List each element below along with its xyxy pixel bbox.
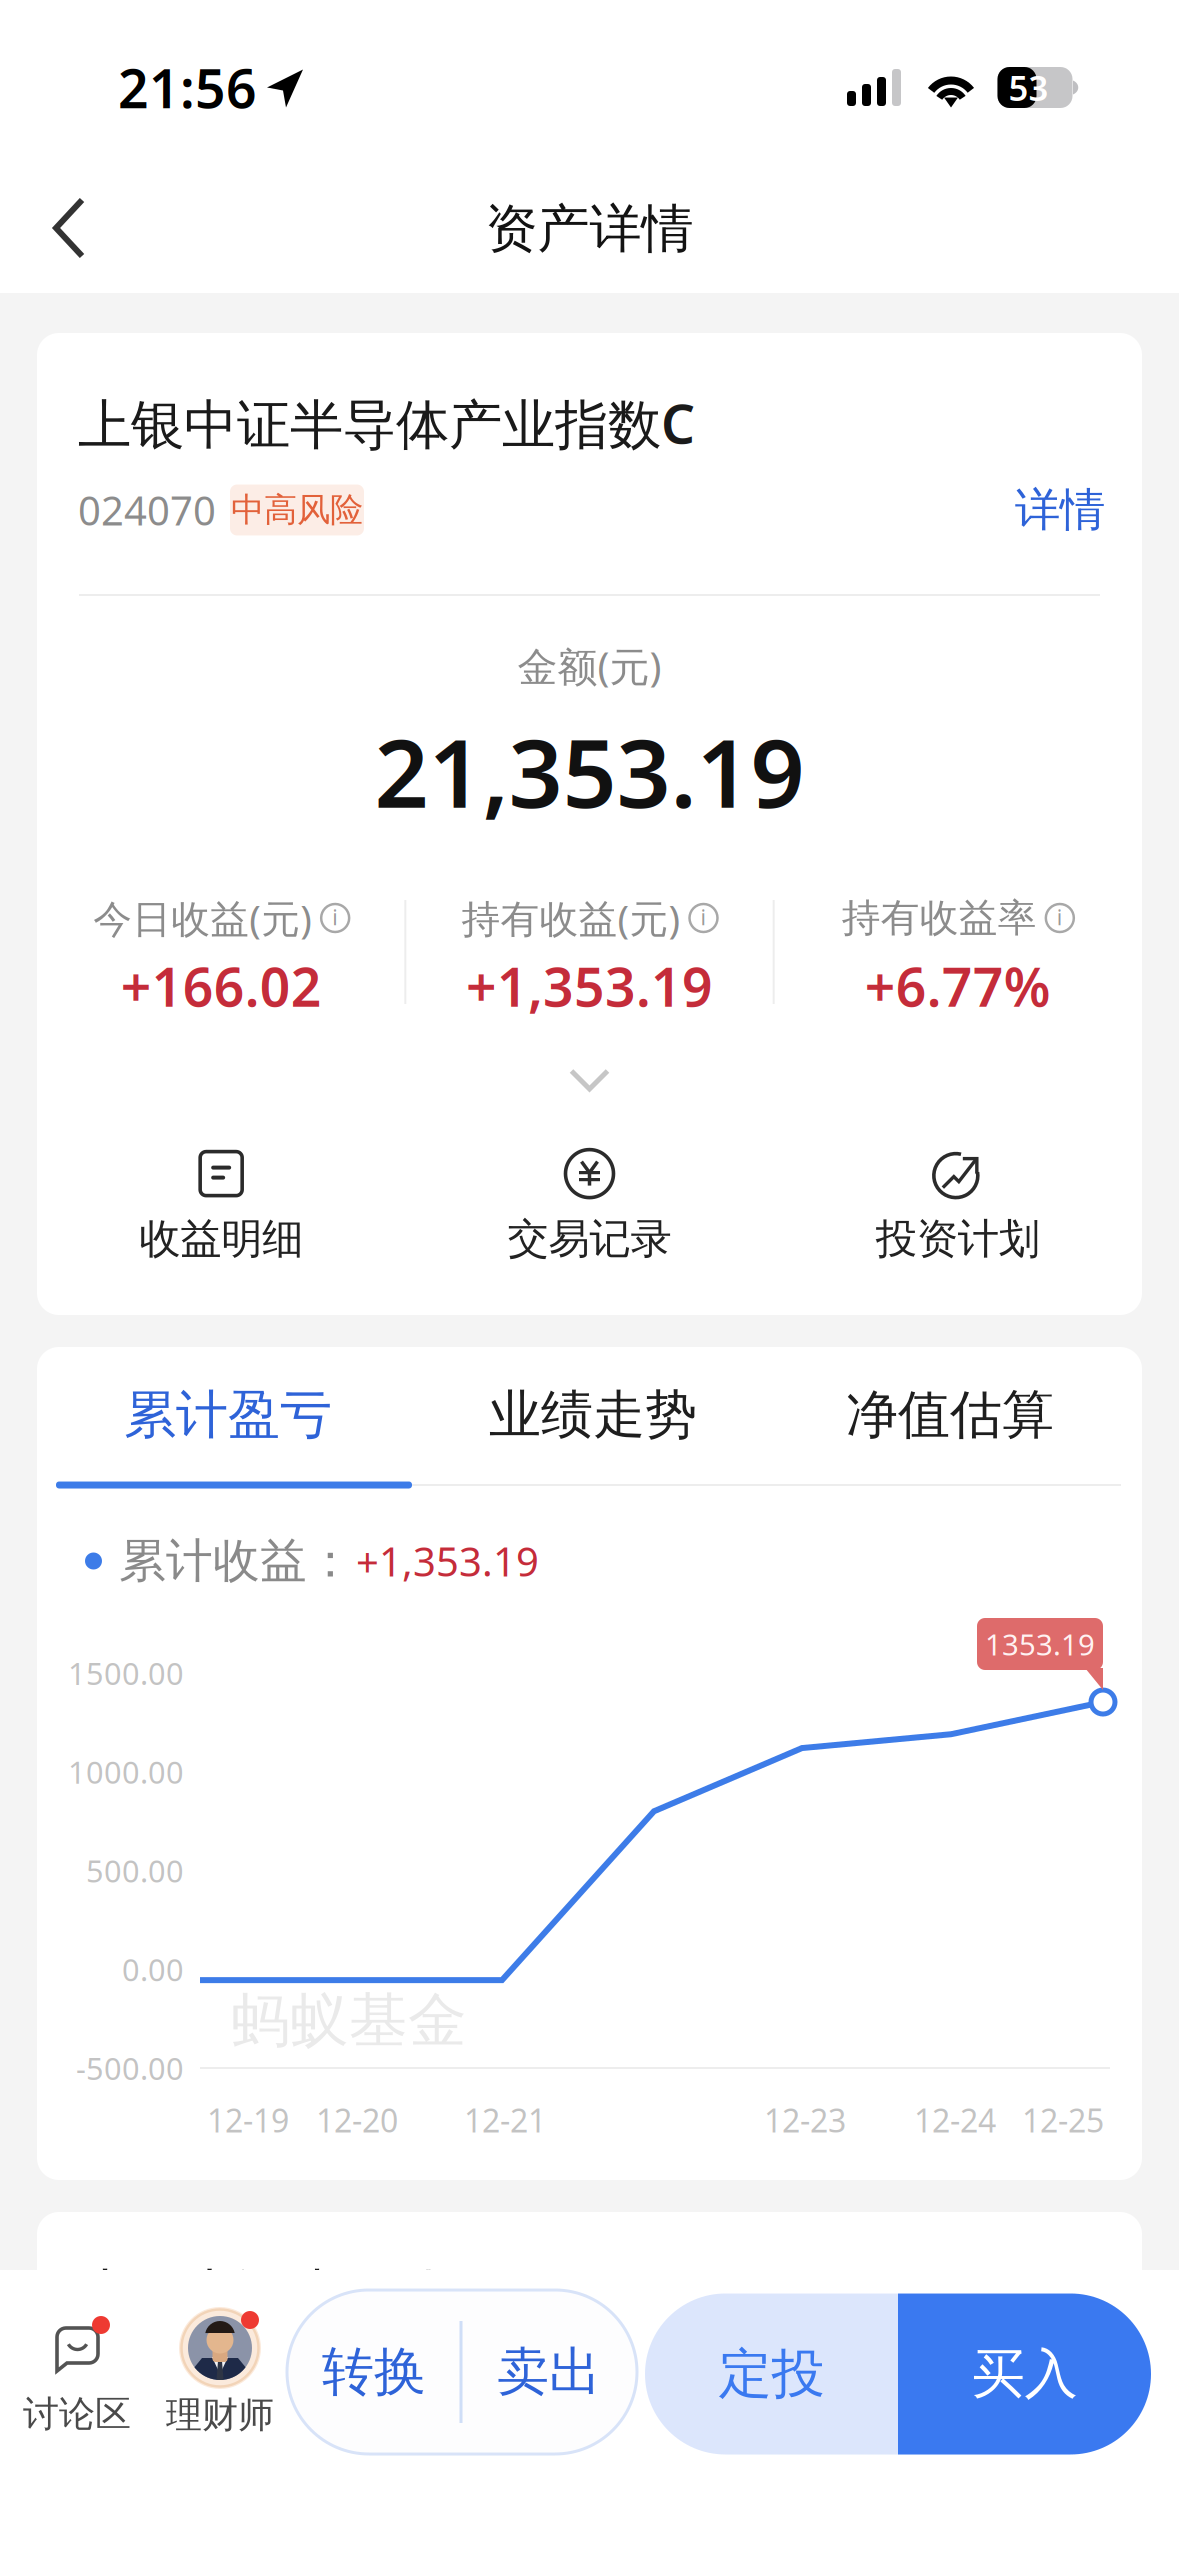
staticText: 讨论区 bbox=[23, 2392, 131, 2436]
staticText: 024070 bbox=[78, 483, 216, 536]
staticText: 卖出 bbox=[497, 2340, 601, 2404]
button[interactable]: 业绩走势 bbox=[415, 1350, 771, 1480]
button[interactable]: 讨论区 bbox=[0, 2270, 156, 2446]
staticText: 蚂蚁基金 bbox=[231, 1985, 467, 2057]
staticText: +1,353.19 bbox=[466, 951, 713, 1021]
button[interactable]: 投资计划 bbox=[818, 1140, 1098, 1270]
staticText: 收益明细 bbox=[139, 1214, 303, 1264]
staticText: 净值估算 bbox=[846, 1383, 1054, 1447]
button[interactable]: Expand bbox=[514, 1045, 664, 1117]
staticText: 上银中证半导体产业指数C bbox=[78, 388, 695, 458]
staticText: 0.00 bbox=[122, 1949, 184, 1990]
staticText: +6.77% bbox=[865, 951, 1051, 1021]
staticText: 业绩走势 bbox=[489, 1383, 697, 1447]
staticText: 21,353.19 bbox=[374, 708, 804, 834]
staticText: 今日收益(元) bbox=[93, 892, 312, 944]
staticText: i bbox=[1057, 903, 1063, 931]
staticText: 累计收益： bbox=[119, 1532, 354, 1590]
button[interactable]: 净值估算 bbox=[772, 1350, 1128, 1480]
staticText: -500.00 bbox=[76, 2048, 184, 2088]
button[interactable]: 理财师 bbox=[140, 2270, 300, 2446]
staticText: 详情 bbox=[1015, 482, 1105, 538]
staticText: 12-24 bbox=[914, 2099, 996, 2141]
staticText: 持有收益率 bbox=[842, 894, 1037, 942]
staticText: +1,353.19 bbox=[356, 1534, 539, 1587]
staticText: 12-19 bbox=[207, 2099, 289, 2141]
staticText: 理财师 bbox=[166, 2393, 274, 2437]
staticText: 500.00 bbox=[86, 1850, 184, 1891]
staticText: 定投 bbox=[718, 2341, 824, 2407]
staticText: 12-20 bbox=[316, 2099, 398, 2141]
staticText: 21:56 bbox=[118, 52, 257, 123]
staticText: 1500.00 bbox=[68, 1653, 184, 1693]
button[interactable]: 详情 bbox=[985, 474, 1105, 546]
staticText: +166.02 bbox=[121, 951, 322, 1021]
staticText: 金额(元) bbox=[517, 639, 661, 692]
button[interactable]: 交易记录 bbox=[449, 1140, 729, 1270]
staticText: 53 bbox=[1008, 64, 1048, 110]
button[interactable]: 累计盈亏 bbox=[50, 1350, 406, 1480]
staticText: 累计盈亏 bbox=[124, 1383, 332, 1447]
staticText: 12-23 bbox=[764, 2099, 846, 2141]
staticText: 1000.00 bbox=[68, 1751, 184, 1792]
button[interactable]: Back bbox=[0, 175, 113, 293]
staticText: 投资计划 bbox=[876, 1214, 1040, 1264]
staticText: i bbox=[700, 903, 706, 931]
staticText: 交易记录 bbox=[507, 1214, 671, 1264]
staticText: 上银中证半导体 bbox=[79, 2262, 450, 2327]
staticText: i bbox=[332, 903, 338, 931]
button[interactable]: 转换 bbox=[287, 2290, 461, 2454]
staticText: 资产详情 bbox=[485, 197, 693, 261]
staticText: 买入 bbox=[971, 2341, 1077, 2407]
staticText: 转换 bbox=[322, 2340, 426, 2404]
staticText: 12-25 bbox=[1022, 2099, 1104, 2141]
staticText: 1353.19 bbox=[985, 1624, 1095, 1663]
button[interactable]: 卖出 bbox=[461, 2290, 637, 2454]
button[interactable]: 收益明细 bbox=[81, 1140, 361, 1270]
button[interactable]: 定投 bbox=[645, 2293, 898, 2454]
staticText: 持有收益(元) bbox=[461, 892, 680, 944]
button[interactable]: 买入 bbox=[898, 2293, 1151, 2454]
staticText: 12-21 bbox=[464, 2099, 546, 2141]
staticText: 中高风险 bbox=[231, 489, 363, 530]
